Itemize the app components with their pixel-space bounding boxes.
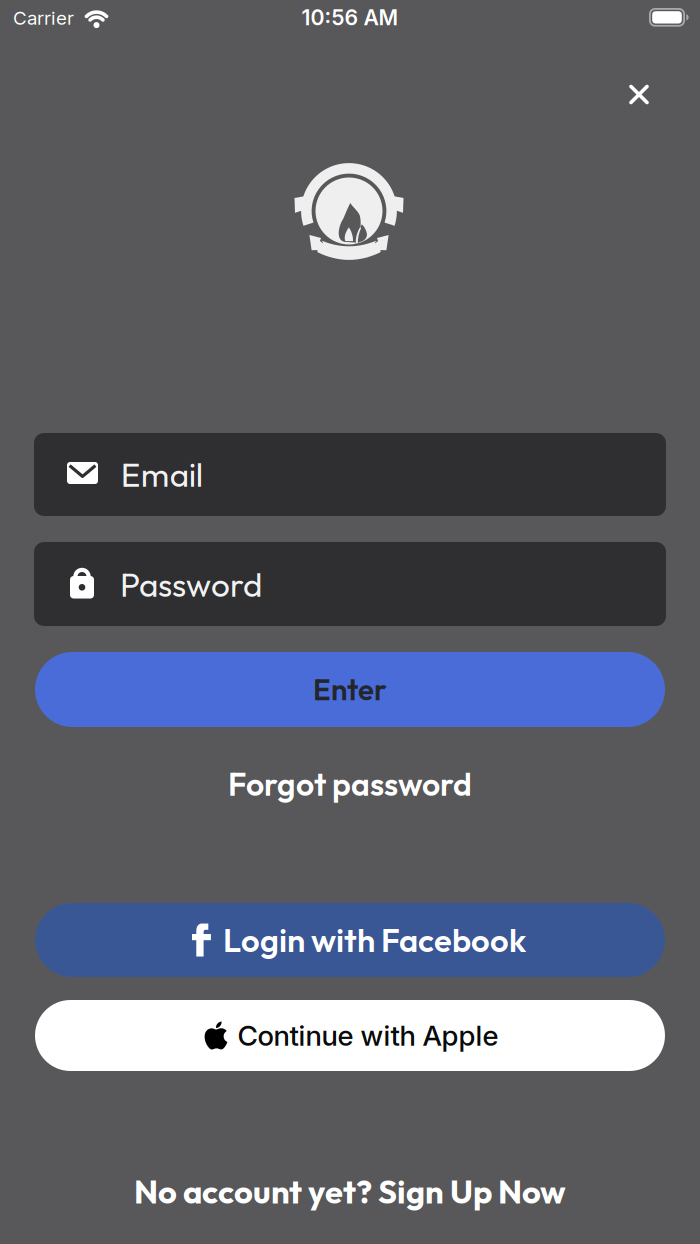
button[interactable]: Forgot password xyxy=(150,759,550,809)
staticText: 10:56 AM xyxy=(301,5,398,30)
staticText: Login with Facebook xyxy=(223,919,526,961)
button[interactable]: Continue with Apple xyxy=(35,1000,665,1071)
staticText: Email xyxy=(121,453,203,495)
button[interactable]: Close xyxy=(617,72,661,116)
button[interactable]: Login with Facebook xyxy=(35,903,665,977)
staticText: No account yet? Sign Up Now xyxy=(134,1171,566,1212)
button[interactable]: Enter xyxy=(35,652,665,727)
staticText: Password xyxy=(120,563,262,605)
button[interactable]: Email xyxy=(34,433,666,516)
button[interactable]: No account yet? Sign Up Now xyxy=(70,1166,630,1216)
staticText: Continue with Apple xyxy=(237,1019,498,1052)
staticText: Enter xyxy=(313,671,387,708)
staticText: Carrier xyxy=(13,7,74,29)
staticText: Forgot password xyxy=(228,764,472,804)
button[interactable]: Password xyxy=(34,542,666,626)
